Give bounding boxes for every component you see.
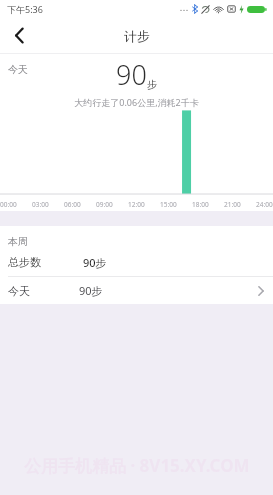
- staticText: 计步: [124, 28, 150, 44]
- staticText: 90: [116, 56, 147, 93]
- button[interactable]: Back: [0, 18, 38, 53]
- staticText: 90步: [83, 255, 107, 270]
- staticText: 今天: [8, 63, 28, 76]
- staticText: 09:00: [96, 200, 113, 209]
- staticText: 06:00: [64, 200, 81, 209]
- staticText: 公用手机精品 · 8V15.XY.COM: [24, 454, 250, 477]
- staticText: 00:00: [0, 200, 17, 209]
- staticText: 24:00: [256, 200, 273, 209]
- staticText: 15:00: [160, 200, 177, 209]
- button[interactable]: 总步数: [0, 248, 273, 276]
- staticText: 12:00: [128, 200, 145, 209]
- staticText: 下午5:36: [7, 3, 43, 15]
- staticText: 步: [147, 78, 157, 91]
- staticText: 18:00: [192, 200, 209, 209]
- staticText: 大约行走了0.06公里,消耗2千卡: [74, 96, 199, 108]
- staticText: 今天: [8, 284, 30, 298]
- staticText: 本周: [8, 235, 28, 248]
- staticText: 21:00: [224, 200, 241, 209]
- staticText: 90步: [79, 283, 103, 298]
- staticText: 总步数: [8, 255, 41, 269]
- staticText: 03:00: [32, 200, 49, 209]
- button[interactable]: 今天: [0, 277, 273, 304]
